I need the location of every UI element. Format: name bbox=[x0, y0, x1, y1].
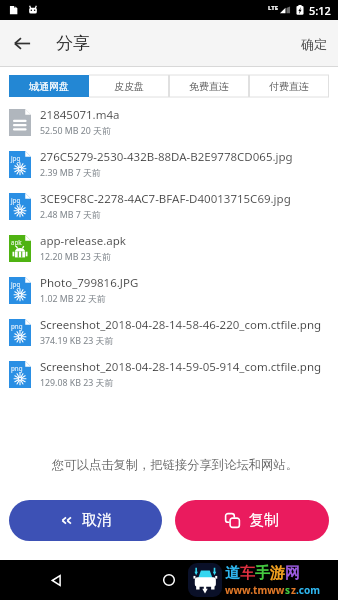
staticText: jpg bbox=[11, 196, 21, 204]
staticText: 手 bbox=[255, 564, 270, 583]
button[interactable]: 21845071.m4a bbox=[0, 101, 338, 143]
staticText: 车 bbox=[240, 564, 255, 583]
button[interactable]: 城通网盘 bbox=[9, 75, 89, 97]
staticText: 分享 bbox=[56, 33, 90, 54]
staticText: jpg bbox=[11, 154, 21, 162]
staticText: png bbox=[11, 364, 23, 372]
button[interactable]: jpg bbox=[0, 185, 338, 227]
staticText: 复制 bbox=[249, 511, 279, 530]
button[interactable]: png bbox=[0, 311, 338, 353]
staticText: 确定 bbox=[301, 36, 327, 52]
staticText: 城通网盘 bbox=[29, 80, 69, 93]
staticText: 129.08 KB 23 天前 bbox=[40, 377, 114, 389]
staticText: app-release.apk bbox=[40, 233, 126, 249]
staticText: 5:12 bbox=[309, 3, 331, 18]
staticText: Photo_799816.JPG bbox=[40, 275, 139, 291]
button[interactable]: Recents bbox=[225, 560, 338, 600]
staticText: 12.20 MB 23 天前 bbox=[40, 251, 111, 263]
staticText: png bbox=[11, 322, 23, 330]
staticText: 道 bbox=[225, 564, 240, 583]
button[interactable]: 确定 bbox=[301, 20, 327, 67]
button[interactable]: 免费直连 bbox=[169, 75, 249, 97]
staticText: 374.19 KB 23 天前 bbox=[40, 335, 114, 347]
button[interactable]: png bbox=[0, 353, 338, 395]
staticText: 21845071.m4a bbox=[40, 107, 120, 123]
staticText: 2.48 MB 7 天前 bbox=[40, 209, 101, 221]
staticText: s bbox=[285, 583, 291, 597]
button[interactable]: 取消 bbox=[9, 500, 162, 541]
staticText: 游 bbox=[270, 564, 285, 583]
staticText: 付费直连 bbox=[269, 80, 309, 93]
button[interactable]: 付费直连 bbox=[249, 75, 329, 97]
staticText: apk bbox=[11, 238, 22, 246]
staticText: 皮皮盘 bbox=[114, 80, 144, 93]
staticText: .com bbox=[296, 583, 320, 597]
staticText: 2.39 MB 7 天前 bbox=[40, 167, 101, 179]
button[interactable]: jpg bbox=[0, 269, 338, 311]
staticText: jpg bbox=[11, 280, 21, 288]
staticText: 免费直连 bbox=[189, 80, 229, 93]
button[interactable]: Home bbox=[112, 560, 225, 600]
staticText: 1.02 MB 22 天前 bbox=[40, 293, 106, 305]
staticText: Screenshot_2018-04-28-14-58-46-220_com.c… bbox=[40, 317, 322, 333]
button[interactable]: apk bbox=[0, 227, 338, 269]
staticText: 取消 bbox=[82, 511, 112, 530]
staticText: 您可以点击复制，把链接分享到论坛和网站。 bbox=[52, 457, 298, 472]
button[interactable]: 皮皮盘 bbox=[89, 75, 169, 97]
staticText: 3CE9CF8C-2278-4AC7-BFAF-D40013715C69.jpg bbox=[40, 191, 291, 207]
button[interactable]: 复制 bbox=[175, 500, 329, 541]
staticText: www.tmww bbox=[225, 583, 285, 597]
staticText: Screenshot_2018-04-28-14-59-05-914_com.c… bbox=[40, 359, 322, 375]
button[interactable]: Back bbox=[0, 560, 112, 600]
button[interactable]: jpg bbox=[0, 143, 338, 185]
staticText: 网 bbox=[285, 564, 300, 583]
button[interactable]: Back bbox=[0, 20, 44, 67]
staticText: 52.50 MB 20 天前 bbox=[40, 125, 111, 137]
staticText: LTE bbox=[268, 4, 279, 12]
staticText: z bbox=[291, 583, 296, 597]
staticText: 276C5279-2530-432B-88DA-B2E9778CD065.jpg bbox=[40, 149, 293, 165]
